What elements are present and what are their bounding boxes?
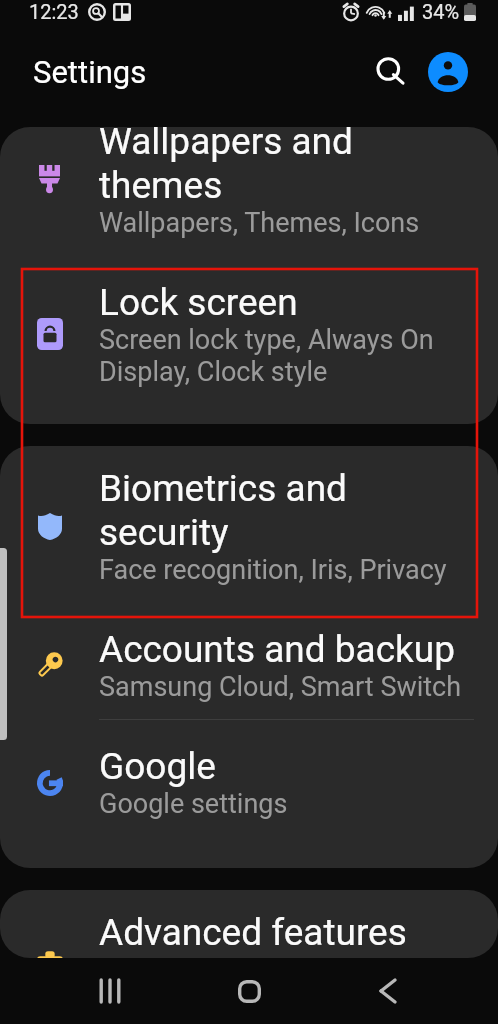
button[interactable]: Google: [0, 724, 498, 841]
staticText: 12:23: [29, 0, 79, 23]
staticText: Google: [99, 745, 216, 788]
staticText: Advanced features: [99, 911, 407, 954]
staticText: Google settings: [99, 788, 288, 820]
staticText: Samsung Cloud, Smart Switch: [99, 671, 462, 703]
button[interactable]: Biometrics and security: [0, 446, 498, 607]
button[interactable]: Search: [367, 48, 415, 96]
button[interactable]: Accounts and backup: [0, 607, 498, 724]
staticText: 34%: [422, 0, 460, 23]
button[interactable]: Recent apps: [81, 962, 139, 1020]
staticText: Screen lock type, Always On Display, Clo…: [99, 324, 449, 387]
button[interactable]: Back: [359, 962, 417, 1020]
staticText: Wallpapers and themes: [99, 127, 371, 207]
button[interactable]: Wallpapers and themes: [0, 127, 498, 260]
staticText: Settings: [33, 54, 147, 90]
button[interactable]: Lock screen: [0, 260, 498, 408]
button[interactable]: Account: [428, 52, 468, 92]
button[interactable]: Advanced features: [0, 890, 498, 958]
staticText: Accounts and backup: [99, 628, 455, 671]
staticText: Biometrics and security: [99, 467, 371, 554]
button[interactable]: Home: [220, 962, 278, 1020]
staticText: Face recognition, Iris, Privacy: [99, 554, 447, 586]
staticText: Lock screen: [99, 281, 298, 324]
staticText: Wallpapers, Themes, Icons: [99, 207, 420, 239]
